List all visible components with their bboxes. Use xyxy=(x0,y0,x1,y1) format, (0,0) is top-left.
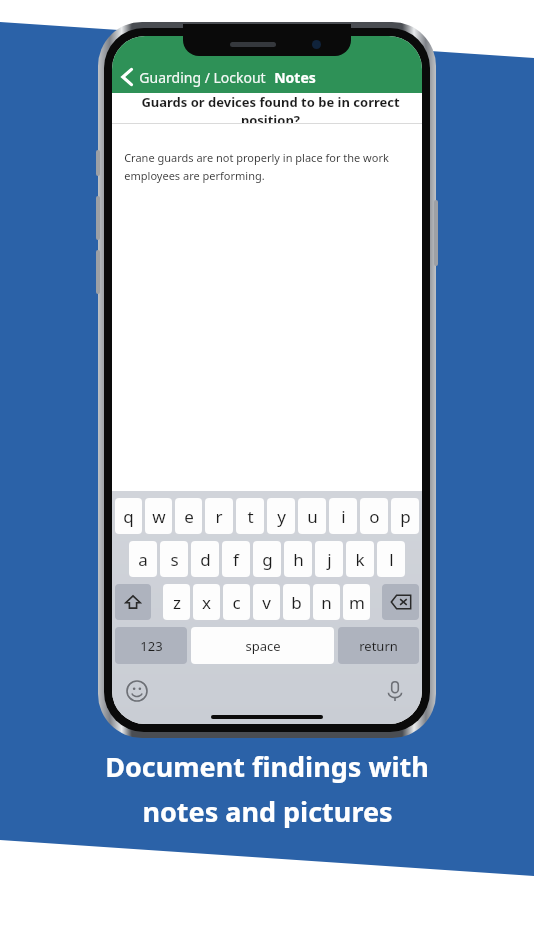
button[interactable]: w xyxy=(145,498,172,534)
staticText: j xyxy=(327,548,332,571)
staticText: s xyxy=(170,548,179,571)
button[interactable]: i xyxy=(329,498,357,534)
button[interactable]: p xyxy=(391,498,419,534)
staticText: return xyxy=(359,637,398,655)
button[interactable]: return xyxy=(338,627,419,664)
button[interactable]: l xyxy=(377,541,405,577)
button[interactable]: Emoji xyxy=(126,680,148,702)
button[interactable]: t xyxy=(236,498,264,534)
staticText: w xyxy=(152,505,166,528)
staticText: Guards or devices found to be in correct… xyxy=(119,93,422,123)
button[interactable]: n xyxy=(313,584,340,620)
button[interactable]: r xyxy=(205,498,233,534)
button[interactable]: Crane guards are not properly in place f… xyxy=(112,124,422,491)
button[interactable]: y xyxy=(267,498,295,534)
staticText: notes and pictures xyxy=(142,793,393,830)
staticText: employees are performing. xyxy=(124,168,265,183)
button[interactable]: h xyxy=(284,541,312,577)
button[interactable]: c xyxy=(223,584,250,620)
button[interactable]: e xyxy=(175,498,202,534)
button[interactable]: Dictation xyxy=(384,680,406,702)
button[interactable]: j xyxy=(315,541,343,577)
button[interactable]: Backspace xyxy=(382,584,419,620)
staticText: Crane guards are not properly in place f… xyxy=(124,150,389,165)
button[interactable]: k xyxy=(346,541,374,577)
staticText: n xyxy=(321,591,332,614)
button[interactable]: f xyxy=(222,541,250,577)
staticText: q xyxy=(123,505,134,528)
staticText: a xyxy=(138,548,148,571)
staticText: Notes xyxy=(274,68,316,87)
staticText: t xyxy=(247,505,254,528)
button[interactable]: m xyxy=(343,584,370,620)
button[interactable]: 123 xyxy=(115,627,187,664)
staticText: z xyxy=(173,591,181,614)
button[interactable]: space xyxy=(191,627,334,664)
button[interactable]: u xyxy=(298,498,326,534)
staticText: u xyxy=(307,505,318,528)
staticText: p xyxy=(400,505,411,528)
staticText: k xyxy=(355,548,365,571)
button[interactable]: s xyxy=(160,541,188,577)
button[interactable]: Back to Guarding / Lockout xyxy=(120,67,422,87)
staticText: 123 xyxy=(140,637,163,655)
button[interactable]: d xyxy=(191,541,219,577)
staticText: v xyxy=(262,591,271,614)
staticText: e xyxy=(184,505,194,528)
button[interactable]: g xyxy=(253,541,281,577)
staticText: c xyxy=(232,591,241,614)
staticText: x xyxy=(202,591,211,614)
button[interactable]: Shift xyxy=(115,584,151,620)
button[interactable]: o xyxy=(360,498,388,534)
button[interactable]: q xyxy=(115,498,142,534)
staticText: d xyxy=(200,548,211,571)
button[interactable]: x xyxy=(193,584,220,620)
staticText: o xyxy=(369,505,380,528)
staticText: i xyxy=(341,505,346,528)
staticText: g xyxy=(262,548,273,571)
staticText: y xyxy=(277,505,286,528)
staticText: f xyxy=(233,548,239,571)
button[interactable]: b xyxy=(283,584,310,620)
staticText: h xyxy=(293,548,304,571)
staticText: Document findings with xyxy=(105,748,429,785)
staticText: b xyxy=(291,591,302,614)
staticText: space xyxy=(245,637,281,655)
button[interactable]: z xyxy=(163,584,190,620)
button[interactable]: a xyxy=(129,541,157,577)
staticText: r xyxy=(215,505,223,528)
button[interactable]: v xyxy=(253,584,280,620)
staticText: m xyxy=(349,591,365,614)
staticText: Guarding / Lockout xyxy=(139,68,266,87)
staticText: l xyxy=(389,548,394,571)
